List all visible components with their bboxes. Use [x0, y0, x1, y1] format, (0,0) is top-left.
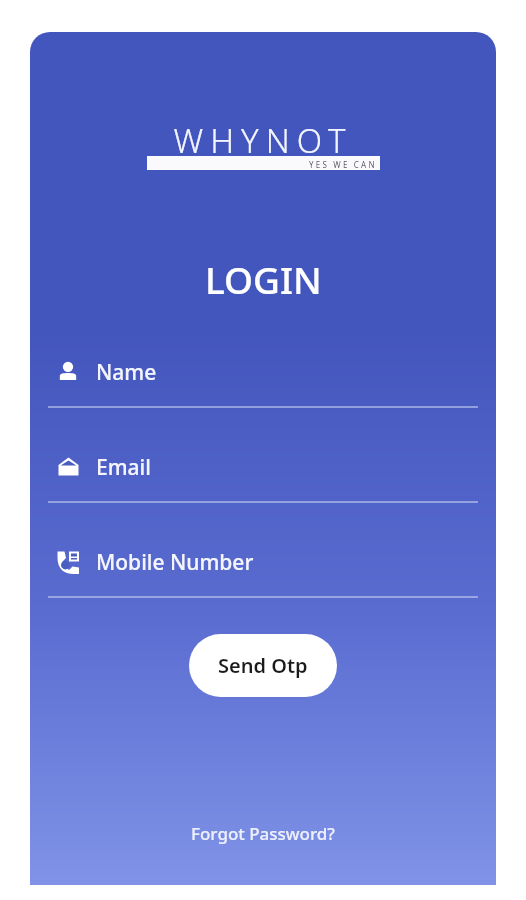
staticText: Name	[96, 358, 157, 387]
button[interactable]: Name	[48, 352, 478, 408]
staticText: YES WE CAN	[309, 159, 377, 170]
button[interactable]: Mobile Number	[48, 542, 478, 598]
button[interactable]: Email	[48, 447, 478, 503]
other: Mobile Number	[56, 550, 81, 575]
staticText: Email	[96, 453, 151, 482]
button[interactable]: Send Otp	[189, 634, 337, 697]
staticText: Forgot Password?	[191, 822, 335, 845]
other: Email	[56, 455, 81, 480]
staticText: WHYNOT	[173, 118, 353, 163]
button[interactable]: Forgot Password?	[179, 814, 347, 853]
staticText: LOGIN	[205, 254, 322, 304]
staticText: Send Otp	[218, 652, 308, 679]
staticText: Mobile Number	[96, 548, 254, 577]
other: Name	[56, 360, 80, 384]
